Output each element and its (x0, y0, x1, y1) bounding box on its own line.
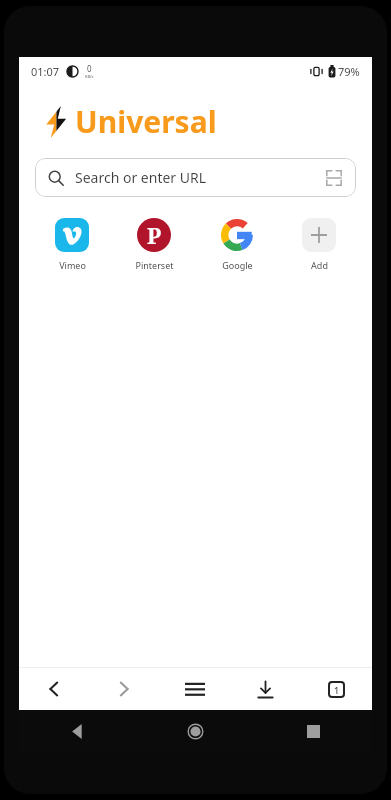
staticText: 01:07 (31, 64, 60, 79)
staticText: Pinterset (135, 259, 174, 271)
staticText: 79% (338, 64, 360, 79)
staticText: Vimeo (59, 259, 86, 271)
staticText: Search or enter URL (75, 168, 207, 187)
staticText: KB/s (85, 74, 94, 79)
button[interactable]: Tabs (301, 668, 372, 710)
staticText: Universal (75, 101, 217, 142)
button[interactable]: Vimeo (39, 215, 105, 273)
button[interactable]: Search or enter URL (35, 158, 356, 197)
button[interactable]: Menu (159, 668, 230, 710)
button[interactable]: Downloads (230, 668, 301, 710)
button[interactable]: Forward (89, 668, 159, 710)
button[interactable]: Scan QR code (325, 169, 343, 187)
staticText: Google (222, 259, 253, 271)
button[interactable]: Home (136, 710, 254, 753)
button[interactable]: Back (19, 710, 136, 753)
staticText: 0 (87, 63, 92, 74)
staticText: P (147, 220, 162, 250)
button[interactable]: Google (204, 215, 270, 273)
button[interactable]: Back (19, 668, 89, 710)
staticText: Add (311, 259, 328, 271)
button[interactable]: Add (286, 215, 352, 273)
staticText: 1 (334, 684, 340, 696)
button[interactable]: P (121, 215, 187, 273)
button[interactable]: Recent apps (254, 710, 372, 753)
